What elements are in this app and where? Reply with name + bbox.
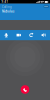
staticText: Nicholas	[2, 10, 14, 13]
button[interactable]: Speaker	[37, 30, 50, 40]
staticText: 00:42	[44, 6, 48, 7]
staticText: 9:41	[2, 0, 9, 3]
button[interactable]: Mute	[0, 30, 12, 40]
button[interactable]: End call	[21, 85, 29, 94]
button[interactable]: Flip camera	[25, 30, 37, 40]
staticText: Calling	[2, 5, 12, 9]
button[interactable]: Camera	[12, 30, 25, 40]
button[interactable]: Call duration	[43, 5, 49, 8]
